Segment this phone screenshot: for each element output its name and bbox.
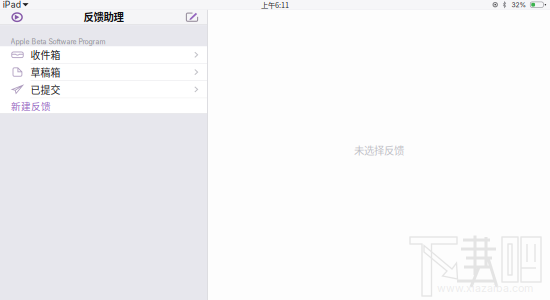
button[interactable]: 草稿箱	[0, 64, 207, 80]
button[interactable]: 已提交	[0, 81, 207, 98]
button[interactable]: New Feedback	[186, 12, 198, 22]
staticText: 未选择反馈	[354, 142, 404, 157]
staticText: 32%	[512, 1, 527, 9]
staticText: Apple Beta Software Program	[10, 37, 105, 46]
staticText: 反馈助理	[83, 9, 123, 24]
staticText: 收件箱	[30, 48, 60, 62]
staticText: www.xiazaiba.com	[437, 281, 533, 294]
button[interactable]: 收件箱	[0, 46, 207, 63]
staticText: 上午6:11	[261, 0, 289, 10]
staticText: 新建反馈	[11, 99, 51, 113]
staticText: 已提交	[30, 82, 60, 97]
button[interactable]: Feedback Assistant	[11, 12, 23, 22]
staticText: 草稿箱	[30, 65, 60, 79]
button[interactable]: 新建反馈	[0, 98, 207, 113]
staticText: iPad	[3, 0, 21, 10]
